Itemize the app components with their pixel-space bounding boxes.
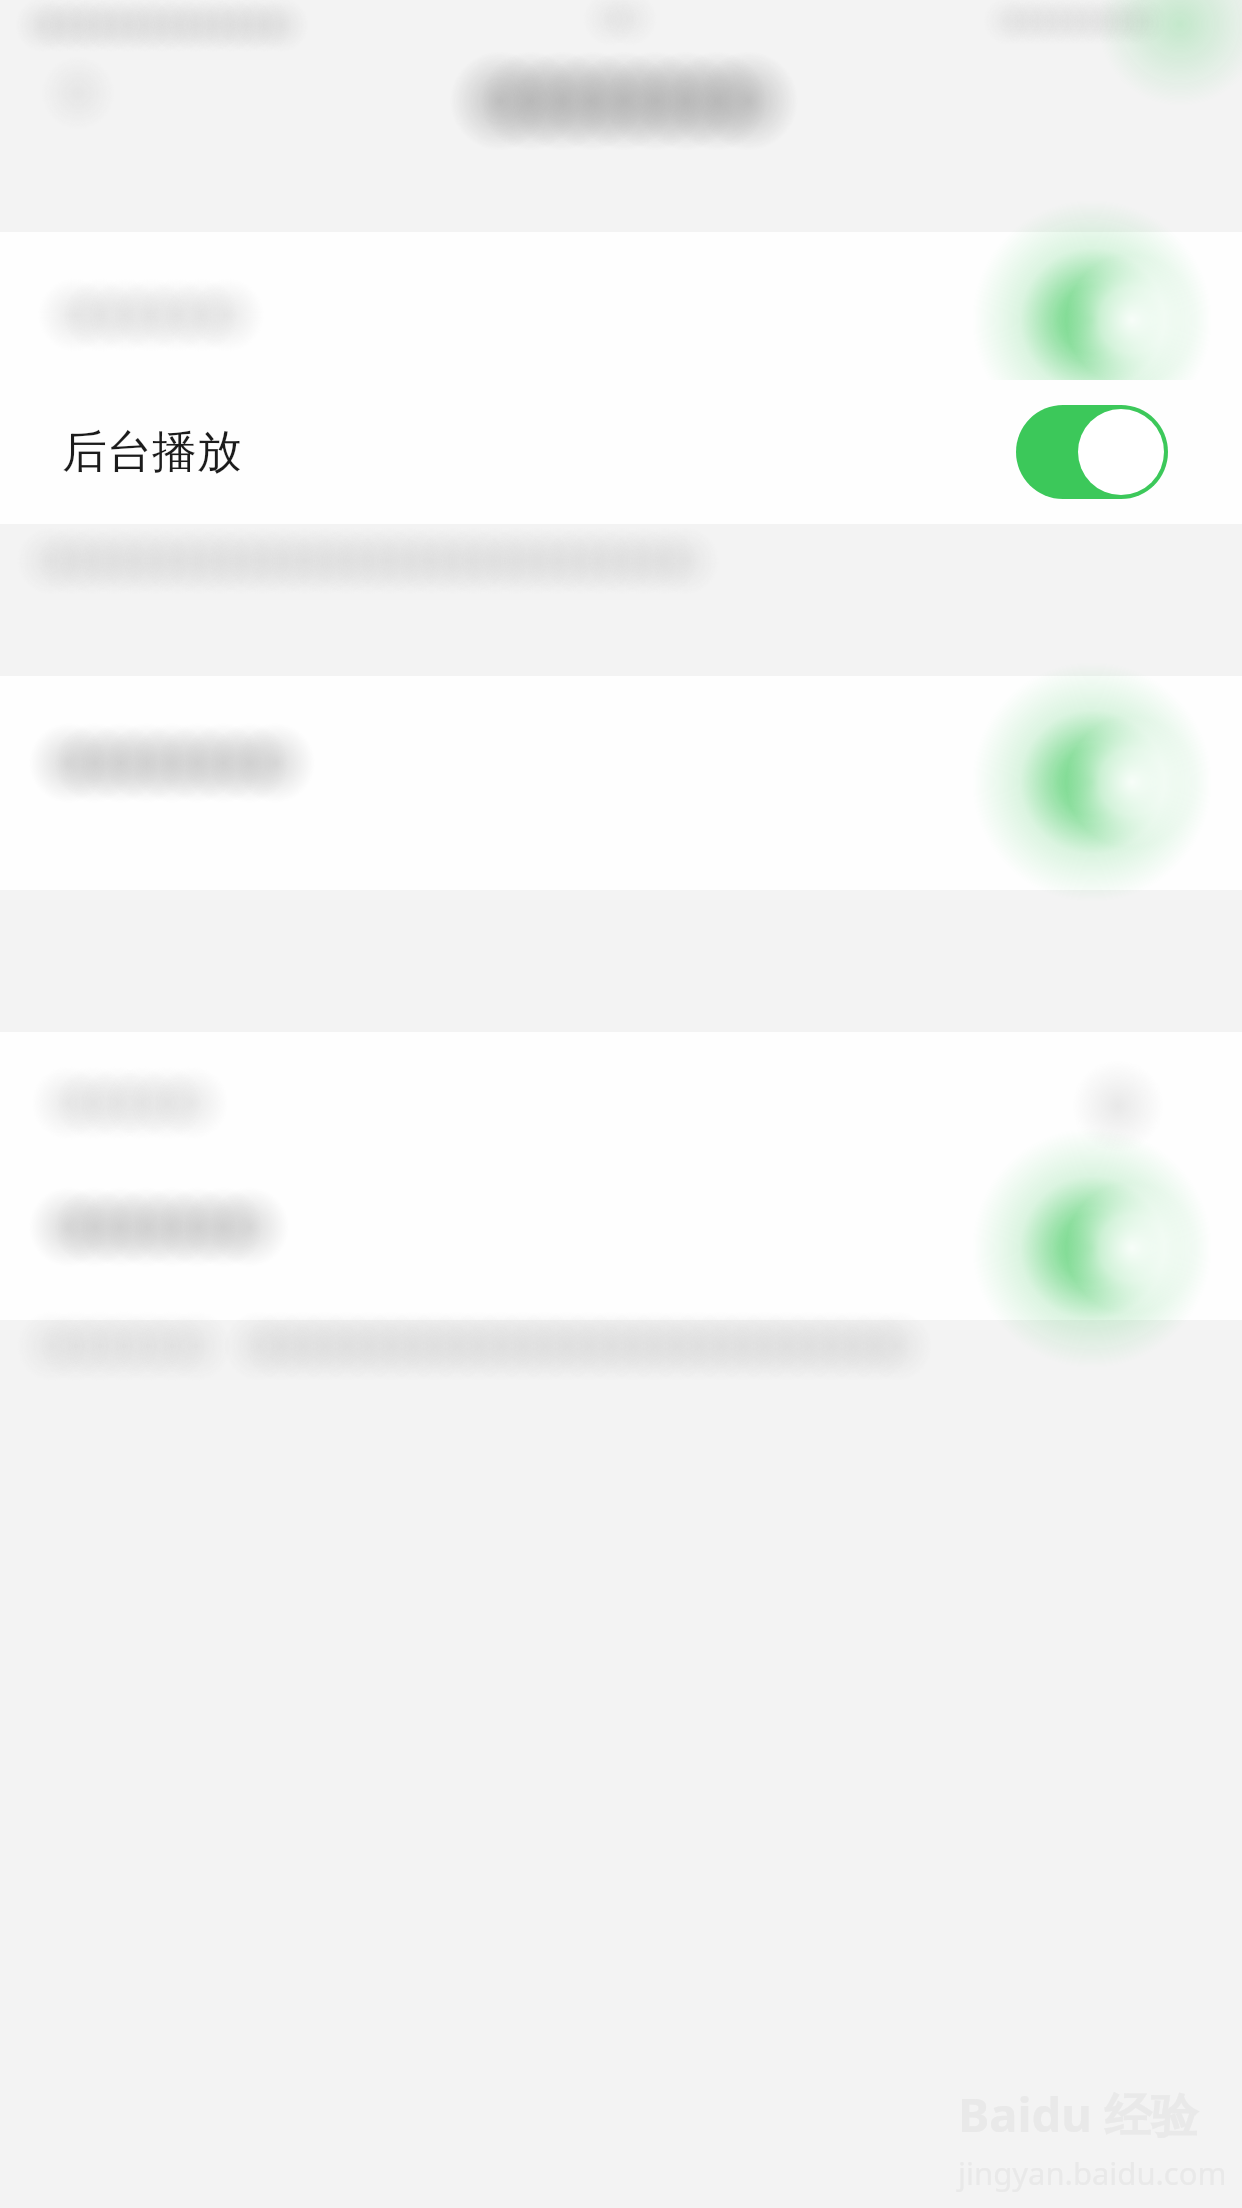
staticText: jingyan.baidu.com bbox=[958, 2152, 1227, 2194]
staticText: 后台播放 bbox=[62, 424, 242, 481]
staticText: Baidu 经验 bbox=[958, 2082, 1198, 2146]
button[interactable]: 后台播放开关, 已开启 bbox=[1016, 405, 1168, 499]
button[interactable]: 后台播放 bbox=[0, 380, 1242, 524]
